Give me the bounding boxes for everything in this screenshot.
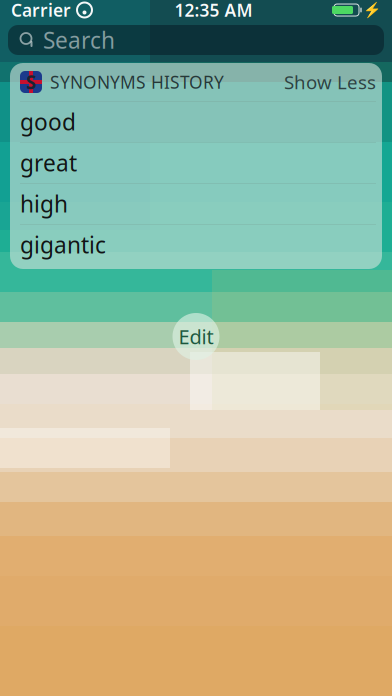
staticText: 12:35 AM	[174, 0, 252, 21]
staticText: SYNONYMS HISTORY	[50, 70, 224, 93]
button[interactable]: Show Less	[274, 64, 376, 100]
staticText: Show Less	[284, 70, 376, 94]
staticText: good	[20, 107, 76, 137]
button[interactable]: great	[10, 142, 376, 183]
staticText: Search	[43, 25, 115, 55]
staticText: high	[20, 189, 68, 219]
button[interactable]: Search	[8, 25, 384, 55]
staticText: S	[26, 70, 36, 94]
staticText: Carrier	[11, 0, 71, 21]
staticText: great	[20, 148, 77, 178]
staticText: ⚡	[363, 2, 381, 18]
button[interactable]: Edit	[172, 313, 219, 360]
button[interactable]: good	[10, 101, 376, 142]
staticText: gigantic	[20, 230, 106, 260]
staticText: Edit	[178, 323, 213, 350]
button[interactable]: high	[10, 183, 376, 224]
button[interactable]: gigantic	[10, 224, 376, 265]
